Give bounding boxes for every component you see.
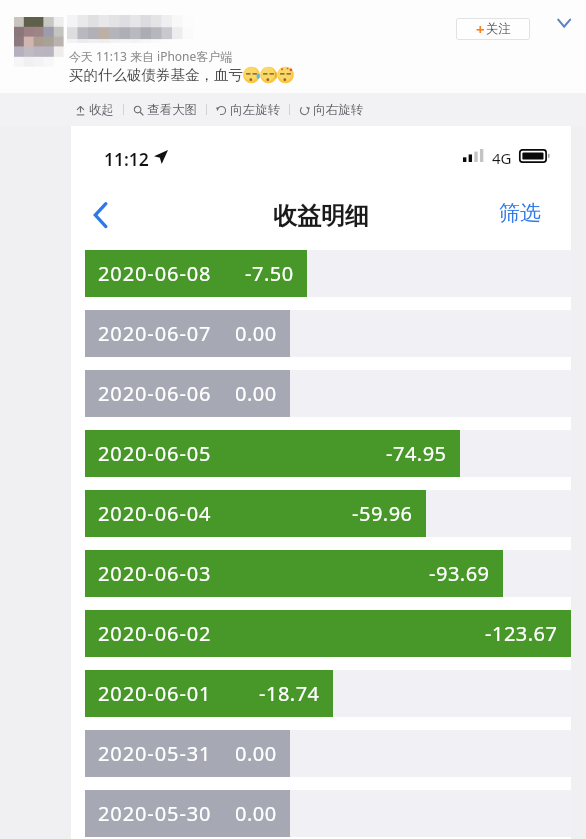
staticText: 向右旋转 bbox=[313, 102, 363, 118]
button[interactable]: 2020-06-08 bbox=[85, 250, 307, 297]
staticText: 关注 bbox=[486, 21, 511, 37]
button[interactable]: 向右旋转 bbox=[295, 102, 367, 118]
button[interactable]: 2020-06-02 bbox=[85, 610, 571, 657]
staticText: 2020-06-06 bbox=[98, 380, 212, 407]
staticText: 查看大图 bbox=[147, 102, 197, 118]
button[interactable]: 2020-06-04 bbox=[85, 490, 426, 537]
staticText: 2020-06-05 bbox=[98, 440, 212, 467]
staticText: 2020-05-31 bbox=[98, 740, 212, 767]
staticText: 收起 bbox=[89, 102, 114, 118]
button[interactable]: 查看大图 bbox=[129, 102, 201, 118]
button[interactable]: 2020-06-03 bbox=[85, 550, 503, 597]
staticText: -7.50 bbox=[245, 260, 294, 287]
staticText: 0.00 bbox=[235, 800, 277, 827]
staticText: 0.00 bbox=[235, 380, 277, 407]
staticText: -74.95 bbox=[386, 440, 447, 467]
button[interactable]: 向左旋转 bbox=[212, 102, 284, 118]
staticText: 2020-06-02 bbox=[98, 620, 212, 647]
staticText: 今天 11:13 来自 iPhone客户端 bbox=[69, 48, 233, 64]
button[interactable]: 2020-05-30 bbox=[85, 790, 290, 837]
staticText: 2020-05-30 bbox=[98, 800, 212, 827]
staticText: -59.96 bbox=[352, 500, 413, 527]
button[interactable]: Back bbox=[81, 181, 125, 225]
staticText: 4G bbox=[492, 148, 512, 168]
button[interactable]: 收起 bbox=[71, 102, 118, 118]
staticText: 0.00 bbox=[235, 320, 277, 347]
staticText: 买的什么破债券基金，血亏 bbox=[69, 66, 243, 84]
staticText: 2020-06-08 bbox=[98, 260, 212, 287]
button[interactable]: 2020-06-05 bbox=[85, 430, 460, 477]
staticText: + bbox=[476, 19, 485, 39]
staticText: 2020-06-04 bbox=[98, 500, 212, 527]
button[interactable]: 2020-06-01 bbox=[85, 670, 333, 717]
staticText: 向左旋转 bbox=[230, 102, 280, 118]
button[interactable]: 筛选 bbox=[491, 195, 549, 231]
staticText: 0.00 bbox=[235, 740, 277, 767]
staticText: 收益明细 bbox=[71, 201, 571, 231]
button[interactable]: 2020-06-07 bbox=[85, 310, 290, 357]
button[interactable]: 2020-06-06 bbox=[85, 370, 290, 417]
staticText: 2020-06-03 bbox=[98, 560, 212, 587]
button[interactable]: More bbox=[550, 10, 578, 34]
staticText: 2020-06-07 bbox=[98, 320, 212, 347]
button[interactable]: 2020-05-31 bbox=[85, 730, 290, 777]
staticText: -18.74 bbox=[259, 680, 320, 707]
staticText: 11:12 bbox=[104, 147, 149, 171]
staticText: 2020-06-01 bbox=[98, 680, 212, 707]
staticText: 筛选 bbox=[499, 200, 541, 226]
staticText: -93.69 bbox=[429, 560, 490, 587]
button[interactable]: + bbox=[456, 18, 530, 40]
staticText: -123.67 bbox=[485, 620, 558, 647]
